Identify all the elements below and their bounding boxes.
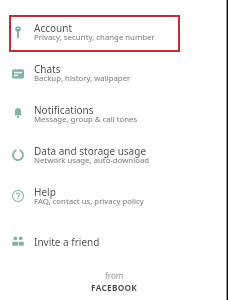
staticText: Account: [34, 21, 73, 35]
staticText: Chats: [34, 62, 61, 76]
staticText: Backup, history, wallpaper: [34, 73, 131, 84]
staticText: Privacy, security, change number: [34, 32, 155, 43]
button[interactable]: Help: [0, 177, 228, 218]
staticText: Help: [34, 185, 56, 199]
staticText: from: [105, 270, 124, 281]
staticText: FAQ, contact us, privacy policy: [34, 196, 144, 207]
staticText: Invite a friend: [34, 235, 100, 249]
staticText: Network usage, auto-download: [34, 155, 150, 166]
button[interactable]: Notifications: [0, 95, 228, 136]
staticText: Data and storage usage: [34, 144, 147, 158]
button[interactable]: Data and storage usage: [0, 136, 228, 177]
staticText: FACEBOOK: [91, 282, 138, 293]
staticText: Message, group & call tones: [34, 114, 138, 125]
staticText: Notifications: [34, 103, 94, 117]
button[interactable]: Chats: [0, 54, 228, 95]
button[interactable]: Account: [0, 13, 228, 54]
button[interactable]: Invite a friend: [0, 218, 228, 259]
